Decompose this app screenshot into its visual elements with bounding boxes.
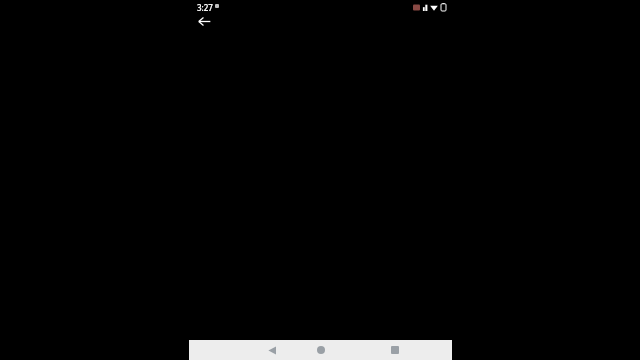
button[interactable]: Home (291, 340, 351, 360)
button[interactable]: Back (228, 340, 316, 360)
button[interactable]: Recent apps (365, 340, 425, 360)
button[interactable]: Back (193, 10, 215, 32)
staticText: 3:27 (197, 2, 213, 13)
